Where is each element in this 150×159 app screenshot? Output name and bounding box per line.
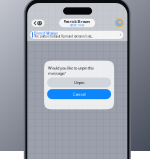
button[interactable]: Back bbox=[31, 20, 44, 27]
staticText: Cancel bbox=[73, 91, 86, 97]
staticText: Pinned Message bbox=[34, 32, 58, 35]
staticText: Patrick Brown bbox=[64, 19, 91, 24]
button[interactable]: Profile bbox=[115, 18, 124, 27]
button[interactable]: Patrick Brown bbox=[59, 19, 95, 27]
staticText: Unpin bbox=[74, 80, 84, 85]
button[interactable]: Cancel bbox=[47, 89, 111, 99]
staticText: The party is today at 8pm and everyone's… bbox=[34, 35, 93, 38]
staticText: Would you like to unpin this message? bbox=[48, 65, 94, 76]
button[interactable]: Pinned Message bbox=[30, 31, 123, 39]
staticText: ✕ bbox=[119, 33, 121, 36]
staticText: active now bbox=[70, 23, 84, 27]
staticText: 11 bbox=[38, 21, 42, 25]
button[interactable]: Unpin bbox=[47, 77, 111, 87]
